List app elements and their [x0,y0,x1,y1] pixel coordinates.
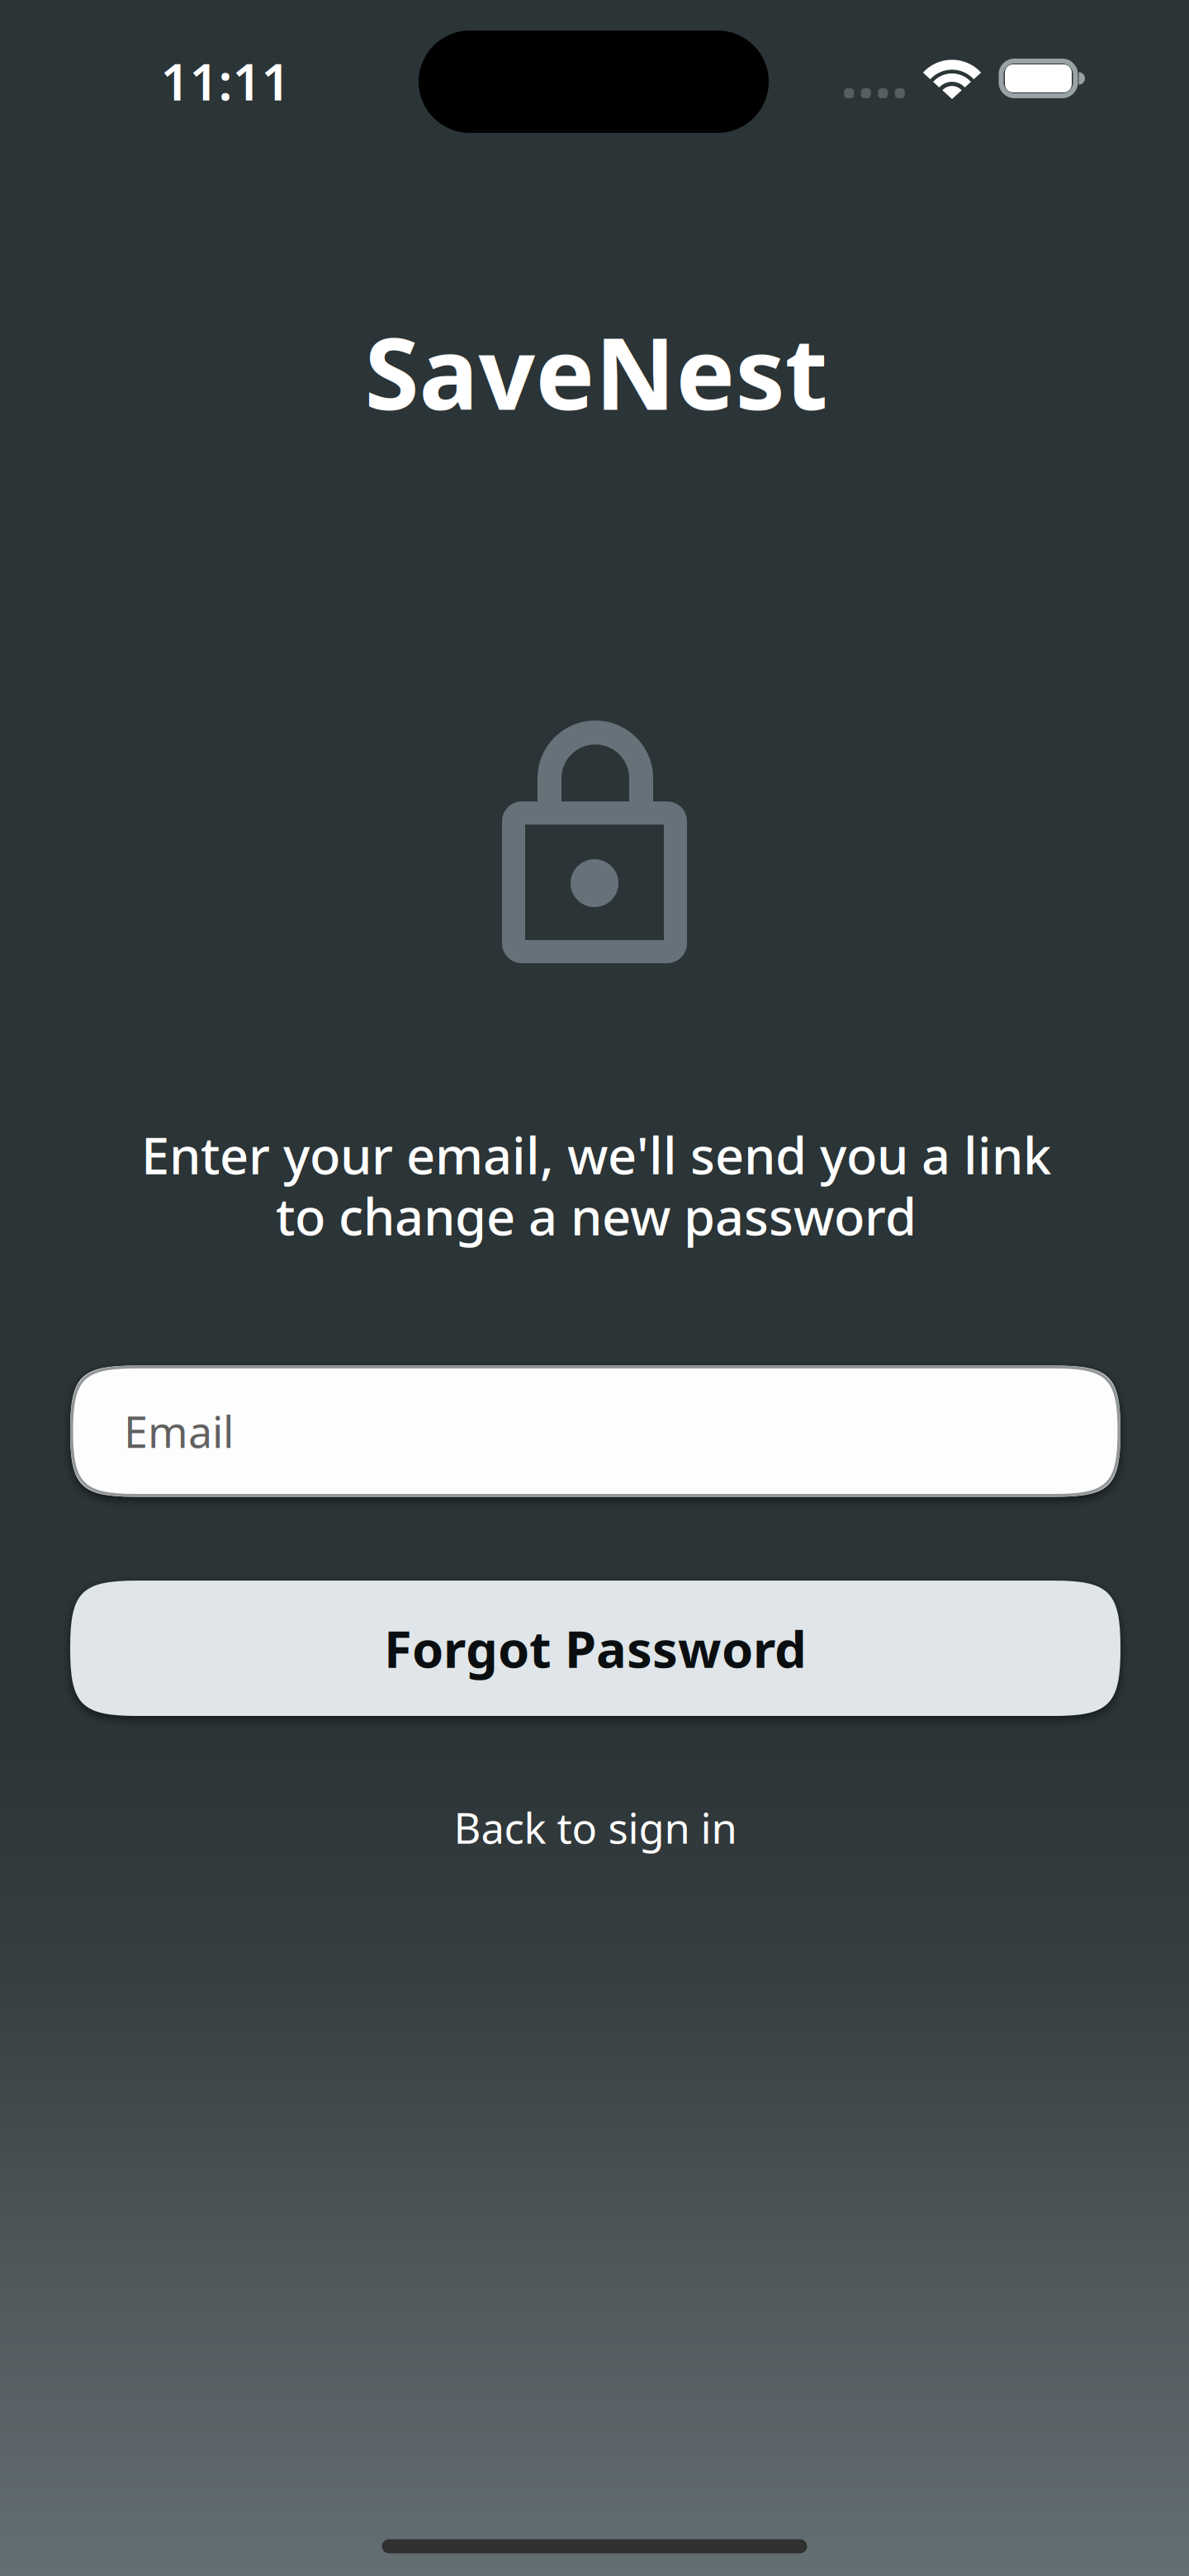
staticText: SaveNest [365,306,828,437]
staticText: Back to sign in [454,1800,737,1855]
staticText: Enter your email, we'll send you a link [141,1121,1051,1188]
button[interactable]: Back to sign in [418,1794,773,1860]
staticText: to change a new password [276,1182,917,1249]
staticText: 11:11 [161,47,290,114]
staticText: Email [124,1403,234,1460]
button[interactable]: Email [70,1366,1120,1497]
staticText: Forgot Password [384,1615,807,1682]
button[interactable]: Forgot Password [70,1581,1120,1716]
